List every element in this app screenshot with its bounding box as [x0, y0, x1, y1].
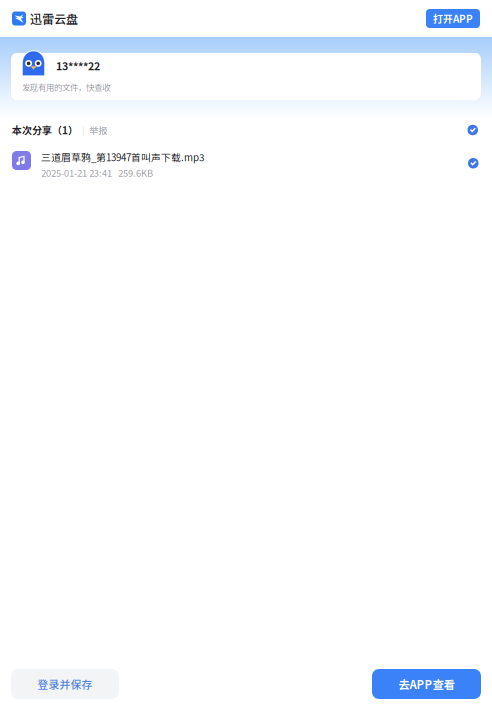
staticText: 2025-01-21 23:41 259.6KB [41, 166, 153, 179]
staticText: 登录并保存 [37, 676, 92, 692]
button[interactable]: Select all files [467, 125, 478, 135]
staticText: 举报 [89, 123, 107, 137]
staticText: 13****22 [56, 58, 100, 73]
staticText: 去APP查看 [398, 676, 454, 692]
staticText: 本次分享（1） [12, 123, 78, 137]
button[interactable]: 打开APP [426, 9, 480, 28]
button[interactable]: 举报 [89, 123, 107, 137]
button[interactable]: 去APP查看 [372, 669, 481, 699]
button[interactable]: 登录并保存 [11, 669, 119, 699]
staticText: 迅雷云盘 [30, 10, 78, 27]
staticText: 打开APP [433, 11, 473, 26]
staticText: | [82, 123, 85, 137]
button[interactable]: 三道眉草鸦_第13947首叫声下载.mp3 [0, 142, 492, 182]
staticText: 发现有用的文件，快查收 [22, 81, 110, 93]
staticText: 三道眉草鸦_第13947首叫声下载.mp3 [41, 150, 204, 164]
